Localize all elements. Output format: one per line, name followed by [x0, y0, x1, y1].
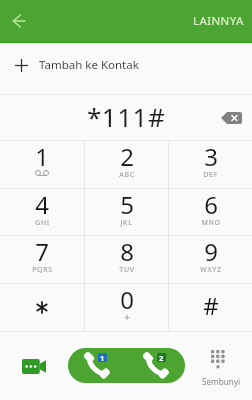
staticText: 8: [120, 235, 134, 268]
button[interactable]: 5: [85, 189, 168, 236]
button[interactable]: 4: [0, 189, 84, 236]
button[interactable]: 7: [0, 236, 84, 283]
button[interactable]: Call with SIM 1: [68, 348, 126, 383]
staticText: MNO: [201, 218, 221, 228]
staticText: Sembunyi: [202, 376, 241, 387]
staticText: *111#: [87, 99, 166, 134]
button[interactable]: Backspace: [216, 103, 246, 133]
staticText: #: [203, 289, 219, 322]
staticText: 1: [35, 140, 49, 173]
staticText: PQRS: [32, 265, 53, 275]
staticText: +: [124, 310, 130, 324]
staticText: 6: [204, 188, 218, 221]
button[interactable]: Sembunyi: [192, 341, 246, 393]
staticText: TUV: [119, 265, 135, 275]
staticText: 2: [120, 140, 134, 173]
button[interactable]: 6: [169, 189, 252, 236]
staticText: 1: [100, 353, 105, 362]
button[interactable]: LAINNYA: [193, 13, 244, 29]
button[interactable]: Back: [4, 6, 34, 36]
button[interactable]: 0: [85, 284, 168, 331]
staticText: GHI: [35, 218, 50, 228]
button[interactable]: 3: [169, 141, 252, 188]
staticText: WXYZ: [200, 265, 222, 275]
staticText: JKL: [120, 218, 133, 228]
button[interactable]: #: [169, 284, 252, 331]
button[interactable]: Call with SIM 2: [127, 348, 185, 383]
button[interactable]: 8: [85, 236, 168, 283]
staticText: DEF: [203, 170, 218, 180]
staticText: 3: [204, 140, 218, 173]
button[interactable]: [0, 284, 84, 331]
staticText: 7: [35, 235, 49, 268]
staticText: 2: [159, 353, 164, 362]
staticText: 4: [35, 188, 49, 221]
button[interactable]: Video call: [14, 346, 54, 386]
staticText: 5: [120, 188, 134, 221]
button[interactable]: 9: [169, 236, 252, 283]
staticText: 9: [204, 235, 218, 268]
staticText: 0: [120, 283, 134, 316]
staticText: ABC: [119, 170, 135, 180]
staticText: Tambah ke Kontak: [39, 57, 139, 73]
button[interactable]: 2: [85, 141, 168, 188]
button[interactable]: 1: [0, 141, 84, 188]
button[interactable]: Tambah ke Kontak: [0, 43, 252, 94]
